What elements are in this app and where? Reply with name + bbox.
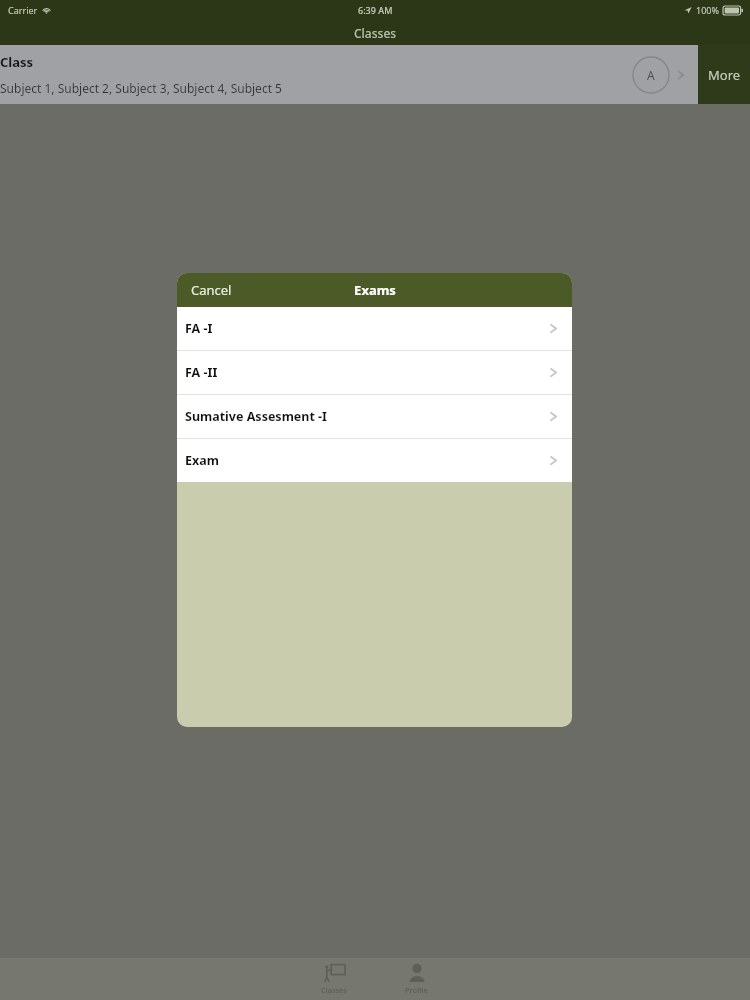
staticText: Class	[0, 53, 34, 71]
button[interactable]: Exam	[177, 439, 572, 482]
staticText: 100%	[696, 4, 719, 16]
staticText: A	[647, 67, 655, 83]
staticText: Classes	[321, 985, 347, 995]
staticText: Sumative Assesment -I	[185, 408, 549, 425]
staticText: Classes	[354, 25, 397, 41]
button[interactable]: Profile	[375, 958, 457, 1000]
staticText: 6:39 AM	[358, 4, 393, 16]
staticText: Carrier	[8, 4, 38, 16]
button[interactable]: FA -II	[177, 351, 572, 394]
button[interactable]: More	[698, 45, 750, 104]
staticText: FA -II	[185, 364, 549, 381]
staticText: More	[708, 66, 741, 84]
button[interactable]: Cancel	[177, 273, 296, 307]
button[interactable]: FA -I	[177, 307, 572, 350]
button[interactable]: Class	[0, 45, 698, 104]
staticText: FA -I	[185, 320, 549, 337]
button[interactable]: Sumative Assesment -I	[177, 395, 572, 438]
button[interactable]: Classes	[293, 958, 375, 1000]
staticText: Subject 1, Subject 2, Subject 3, Subject…	[0, 80, 282, 96]
staticText: Exams	[354, 281, 396, 299]
staticText: Profile	[405, 985, 428, 995]
staticText: Cancel	[191, 281, 232, 299]
staticText: Exam	[185, 452, 549, 469]
